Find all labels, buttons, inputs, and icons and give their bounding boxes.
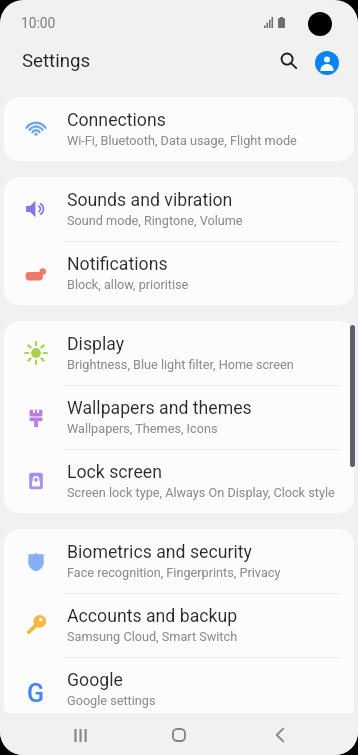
staticText: Notifications bbox=[67, 254, 168, 275]
staticText: Lock screen bbox=[67, 462, 162, 483]
button[interactable]: Account bbox=[307, 43, 347, 83]
staticText: Samsung Cloud, Smart Switch bbox=[67, 629, 238, 644]
button[interactable]: Connections bbox=[4, 97, 354, 161]
button[interactable]: Back bbox=[256, 714, 304, 755]
button[interactable]: Home bbox=[155, 714, 203, 755]
staticText: Sound mode, Ringtone, Volume bbox=[67, 213, 243, 228]
button[interactable]: Display bbox=[4, 321, 354, 385]
staticText: Block, allow, prioritise bbox=[67, 277, 189, 292]
staticText: Accounts and backup bbox=[67, 606, 238, 627]
staticText: Brightness, Blue light filter, Home scre… bbox=[67, 357, 294, 372]
staticText: Sounds and vibration bbox=[67, 190, 233, 211]
button[interactable]: Biometrics and security bbox=[4, 529, 354, 593]
button[interactable]: Lock screen bbox=[4, 449, 354, 513]
staticText: Display bbox=[67, 334, 125, 355]
staticText: Settings bbox=[22, 50, 91, 72]
button[interactable]: Sounds and vibration bbox=[4, 177, 354, 241]
button[interactable]: Recents bbox=[55, 714, 103, 755]
staticText: Wi-Fi, Bluetooth, Data usage, Flight mod… bbox=[67, 133, 297, 148]
staticText: Google settings bbox=[67, 693, 156, 708]
staticText: 10:00 bbox=[21, 15, 56, 31]
staticText: Screen lock type, Always On Display, Clo… bbox=[67, 485, 335, 500]
staticText: Wallpapers and themes bbox=[67, 398, 252, 419]
button[interactable]: Wallpapers and themes bbox=[4, 385, 354, 449]
button[interactable]: Search bbox=[269, 41, 309, 81]
button[interactable]: Accounts and backup bbox=[4, 593, 354, 657]
button[interactable]: G bbox=[4, 657, 354, 721]
staticText: G bbox=[27, 679, 45, 703]
staticText: Google bbox=[67, 670, 123, 691]
button[interactable]: Notifications bbox=[4, 241, 354, 305]
staticText: Biometrics and security bbox=[67, 542, 252, 563]
staticText: Face recognition, Fingerprints, Privacy bbox=[67, 565, 281, 580]
staticText: Wallpapers, Themes, Icons bbox=[67, 421, 218, 436]
staticText: Connections bbox=[67, 110, 166, 131]
